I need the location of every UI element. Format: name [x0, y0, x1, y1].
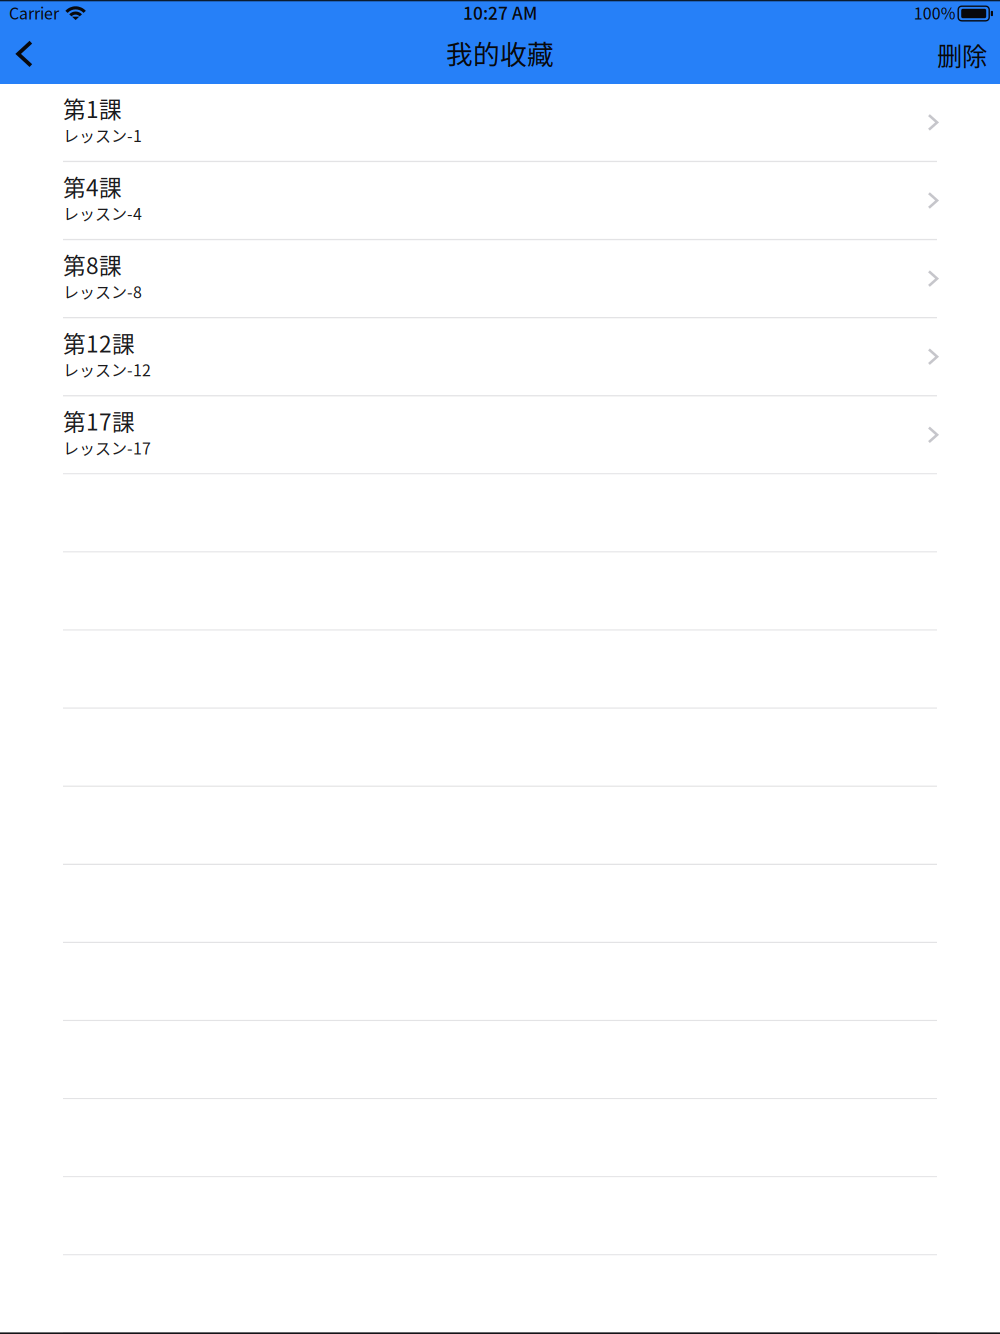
staticText: 第8課	[63, 248, 122, 281]
staticText: 删除	[937, 36, 987, 73]
staticText: 我的收藏	[446, 33, 554, 72]
button[interactable]: 第12課	[0, 318, 1000, 395]
button[interactable]: 第1課	[0, 84, 1000, 161]
staticText: 10:27 AM	[463, 0, 537, 25]
button[interactable]: Back	[5, 27, 44, 84]
button[interactable]: 第17課	[0, 396, 1000, 473]
staticText: 第17課	[63, 404, 135, 437]
staticText: レッスン-12	[63, 358, 151, 381]
button[interactable]: 第4課	[0, 162, 1000, 239]
staticText: 第4課	[63, 170, 122, 203]
staticText: Carrier	[9, 1, 59, 24]
button[interactable]: 第8課	[0, 240, 1000, 317]
staticText: 第12課	[63, 326, 135, 359]
staticText: レッスン-8	[63, 280, 142, 303]
staticText: レッスン-17	[63, 436, 151, 459]
staticText: 第1課	[63, 92, 122, 125]
staticText: レッスン-1	[63, 123, 142, 147]
button[interactable]: 删除	[922, 27, 1000, 84]
staticText: 100%	[914, 1, 956, 24]
staticText: レッスン-4	[63, 201, 142, 225]
